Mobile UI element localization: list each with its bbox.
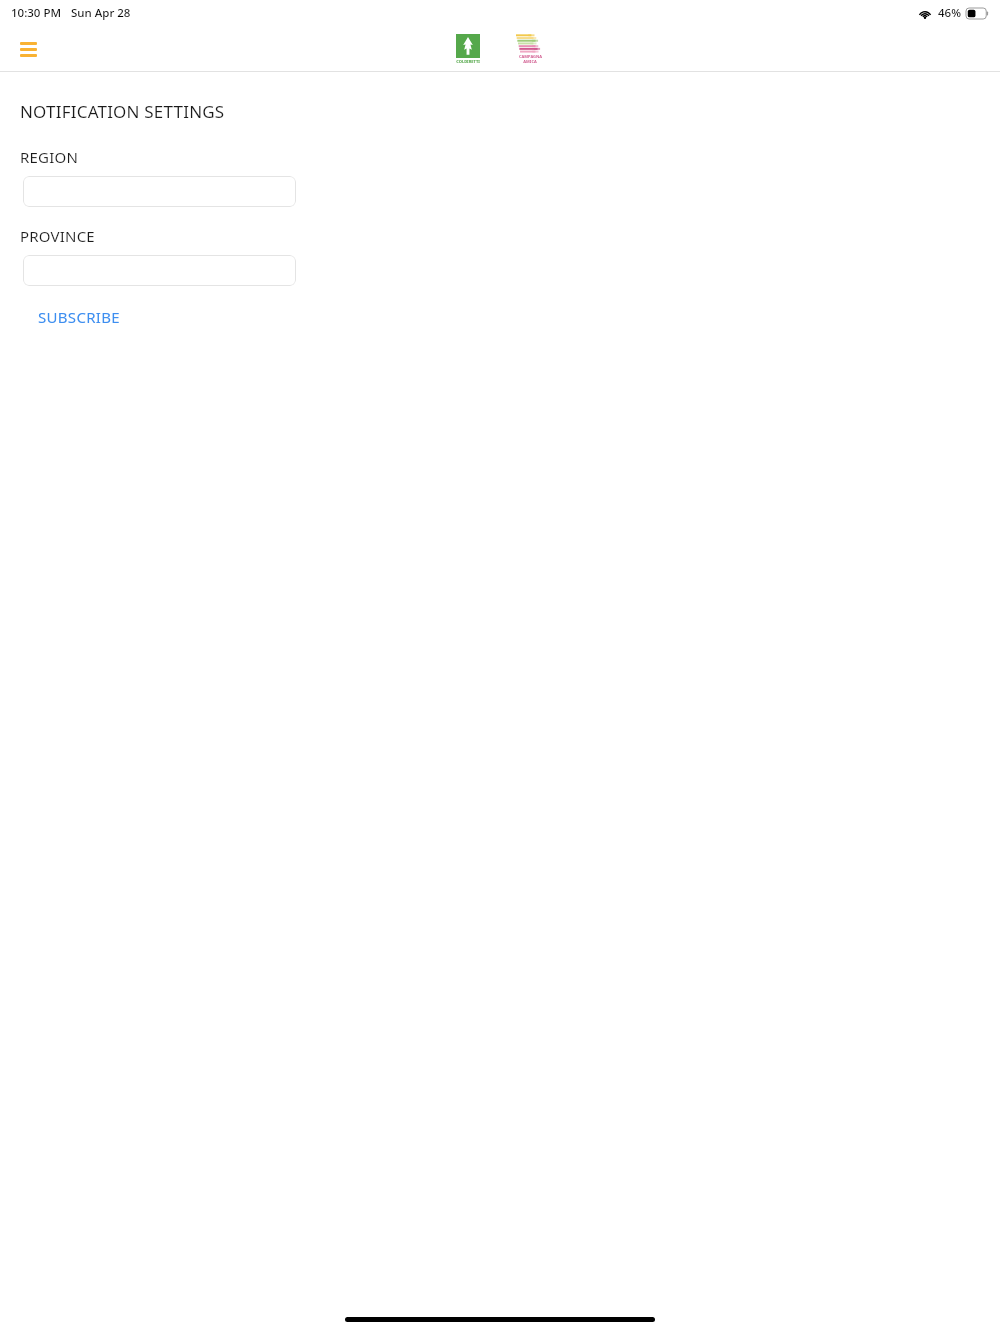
button[interactable]: Open navigation menu <box>10 31 46 67</box>
staticText: AMICA <box>523 59 537 64</box>
button[interactable]: Coldiretti <box>454 32 482 66</box>
staticText: Sun Apr 28 <box>71 5 131 21</box>
staticText: 10:30 PM <box>11 5 62 21</box>
staticText: 46% <box>938 5 961 21</box>
staticText: PROVINCE <box>20 226 95 246</box>
button[interactable]: SUBSCRIBE <box>24 301 134 333</box>
button[interactable]: Select Region <box>23 176 296 207</box>
staticText: CAMPAGNA <box>519 54 542 59</box>
button[interactable]: Select Province <box>23 255 296 286</box>
staticText: SUBSCRIBE <box>38 307 120 327</box>
button[interactable]: Campagna Amica <box>514 32 546 66</box>
staticText: REGION <box>20 147 78 167</box>
staticText: COLDIRETTI <box>456 59 480 64</box>
staticText: NOTIFICATION SETTINGS <box>20 100 225 123</box>
